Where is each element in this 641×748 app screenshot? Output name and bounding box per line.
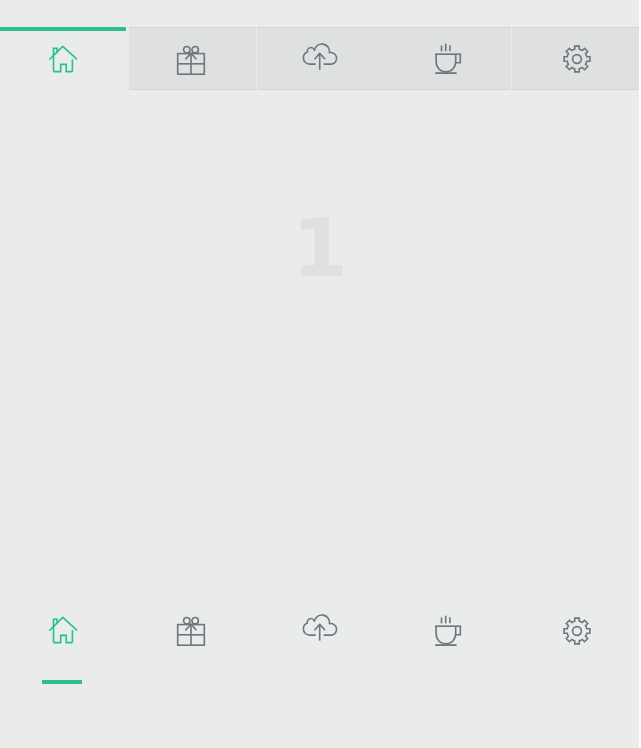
button[interactable]: Coffee <box>383 600 511 748</box>
button[interactable]: Settings <box>511 600 639 748</box>
button[interactable]: Home <box>0 600 128 748</box>
staticText: 1 <box>292 202 348 295</box>
button[interactable]: Upload <box>256 600 384 748</box>
button[interactable]: Upload <box>256 0 384 91</box>
button[interactable]: Home <box>0 0 128 91</box>
button[interactable]: Coffee <box>383 0 511 91</box>
button[interactable]: Gifts <box>128 0 256 91</box>
button[interactable]: Settings <box>511 0 639 91</box>
button[interactable]: Gifts <box>128 600 256 748</box>
